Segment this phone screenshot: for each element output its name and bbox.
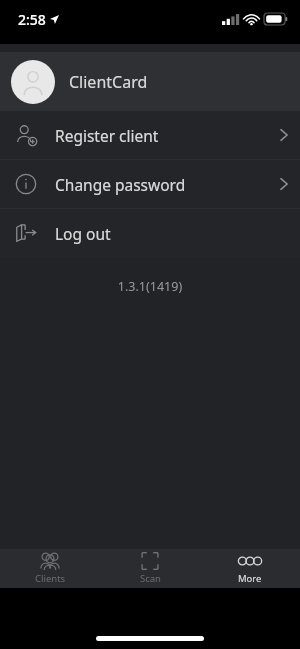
button[interactable]: Change password xyxy=(0,160,300,208)
staticText: Log out xyxy=(55,223,111,244)
button[interactable]: ClientCard xyxy=(0,52,300,111)
staticText: 2:58 xyxy=(18,10,46,29)
staticText: ClientCard xyxy=(69,71,148,93)
button[interactable]: More xyxy=(200,549,300,588)
staticText: Scan xyxy=(140,572,161,585)
staticText: Register client xyxy=(55,125,159,146)
staticText: Change password xyxy=(55,174,186,195)
button[interactable]: Clients xyxy=(0,549,100,588)
button[interactable]: Scan xyxy=(100,549,200,588)
staticText: Clients xyxy=(35,572,66,585)
button[interactable]: Register client xyxy=(0,111,300,159)
button[interactable]: Log out xyxy=(0,209,300,257)
staticText: 1.3.1(1419) xyxy=(0,278,300,295)
staticText: More xyxy=(238,572,262,585)
